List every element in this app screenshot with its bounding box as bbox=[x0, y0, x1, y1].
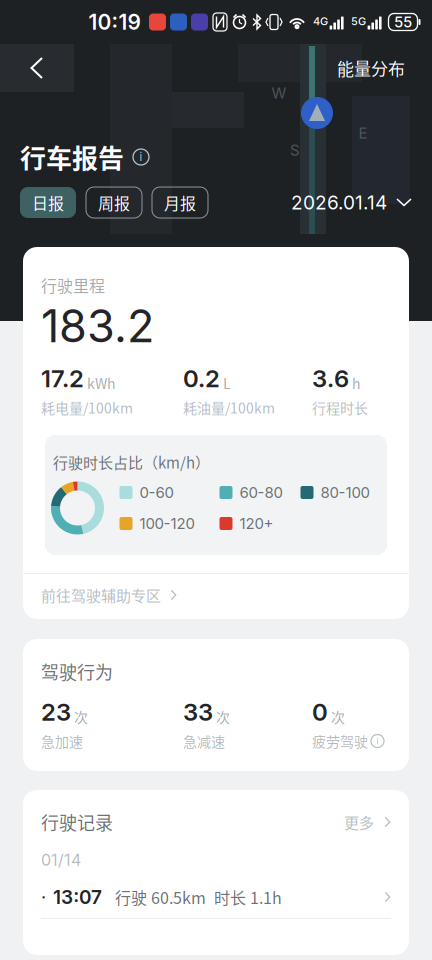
button[interactable]: 日报 bbox=[20, 187, 76, 218]
staticText: 耗油量/100km bbox=[183, 397, 275, 418]
staticText: 0 bbox=[312, 697, 328, 726]
staticText: h bbox=[352, 373, 360, 393]
staticText: 2026.01.14 bbox=[291, 191, 387, 214]
staticText: 行驶时长占比（km/h） bbox=[53, 451, 210, 473]
staticText: 行驶里程 bbox=[41, 273, 105, 297]
staticText: 耗电量/100km bbox=[41, 397, 133, 418]
staticText: · bbox=[41, 886, 46, 908]
staticText: 疲劳驾驶 bbox=[312, 731, 368, 751]
button[interactable]: 能量分布 bbox=[326, 44, 416, 92]
staticText: 行驶 60.5km 时长 1.1h bbox=[115, 885, 282, 909]
staticText: 5G bbox=[351, 14, 366, 28]
staticText: 10:19 bbox=[88, 9, 140, 35]
staticText: 行车报告 bbox=[20, 138, 124, 176]
staticText: 33 bbox=[183, 697, 213, 726]
button[interactable]: 2026.01.14 bbox=[276, 187, 412, 218]
staticText: 0.2 bbox=[183, 364, 220, 393]
button[interactable]: Back bbox=[0, 44, 74, 92]
staticText: 55 bbox=[394, 13, 412, 31]
staticText: 次 bbox=[216, 706, 230, 726]
staticText: i bbox=[139, 150, 142, 164]
staticText: 17.2 bbox=[41, 364, 84, 393]
staticText: 更多 bbox=[344, 811, 374, 833]
staticText: 次 bbox=[74, 706, 88, 726]
staticText: 前往驾驶辅助专区 bbox=[41, 584, 161, 606]
staticText: 60-80 bbox=[239, 483, 282, 501]
staticText: 183.2 bbox=[41, 299, 154, 353]
staticText: 4G bbox=[313, 14, 328, 28]
button[interactable]: 周报 bbox=[86, 187, 142, 218]
staticText: L bbox=[223, 373, 231, 393]
staticText: E bbox=[358, 124, 367, 142]
staticText: i bbox=[376, 736, 378, 746]
staticText: 100-120 bbox=[139, 514, 194, 532]
staticText: 周报 bbox=[98, 191, 130, 214]
staticText: 月报 bbox=[164, 191, 196, 214]
button[interactable]: 月报 bbox=[152, 187, 208, 218]
staticText: 120+ bbox=[239, 514, 273, 532]
staticText: 01/14 bbox=[41, 850, 81, 870]
staticText: 能量分布 bbox=[337, 56, 405, 80]
staticText: 急加速 bbox=[41, 731, 83, 751]
staticText: 13:07 bbox=[53, 885, 102, 908]
button[interactable]: 前往驾驶辅助专区 bbox=[41, 574, 391, 616]
staticText: 3.6 bbox=[312, 364, 349, 393]
staticText: 80-100 bbox=[320, 483, 369, 501]
button[interactable]: 更多 bbox=[334, 810, 391, 834]
staticText: 23 bbox=[41, 697, 71, 726]
button[interactable]: · bbox=[41, 876, 391, 918]
staticText: 驾驶行为 bbox=[41, 658, 113, 685]
staticText: 行程时长 bbox=[312, 397, 368, 418]
staticText: 次 bbox=[331, 706, 345, 726]
staticText: 行驶记录 bbox=[41, 809, 113, 835]
staticText: 0-60 bbox=[139, 483, 173, 501]
staticText: 日报 bbox=[32, 191, 64, 214]
staticText: 急减速 bbox=[183, 731, 225, 751]
staticText: S bbox=[290, 141, 300, 159]
staticText: kWh bbox=[87, 373, 115, 393]
staticText: W bbox=[271, 84, 286, 102]
